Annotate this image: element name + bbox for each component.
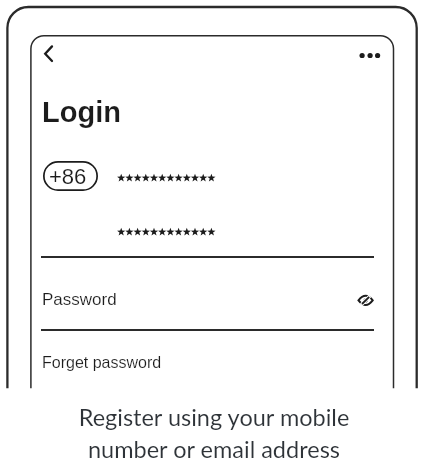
button[interactable]: Password [41,272,351,322]
staticText: Forget password [42,354,162,372]
staticText: +86 [49,164,87,189]
staticText: Register using your mobile number or ema… [3,403,422,463]
button[interactable]: More options [350,43,386,67]
button[interactable]: Forget password [41,340,241,382]
button[interactable]: Verification code [112,218,374,246]
button[interactable]: Phone number [112,164,374,192]
staticText: Password [42,290,117,309]
staticText: Login [42,96,121,128]
button[interactable]: Back [36,40,64,68]
button[interactable]: +86 [43,161,98,191]
button[interactable]: Show password [354,288,378,312]
